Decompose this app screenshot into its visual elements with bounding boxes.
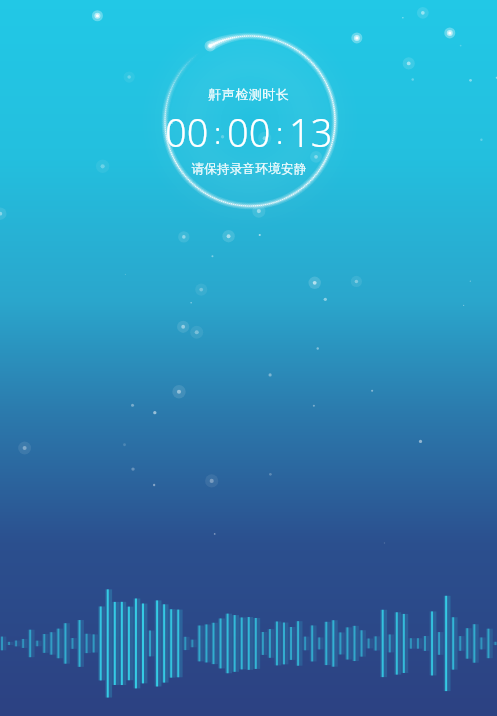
staticText: : xyxy=(214,112,222,153)
staticText: 00 xyxy=(227,106,271,158)
staticText: : xyxy=(276,112,284,153)
staticText: 13 xyxy=(289,106,333,158)
button[interactable]: Recording waveform xyxy=(0,606,497,710)
staticText: 鼾声检测时长 xyxy=(208,86,289,102)
staticText: 00 xyxy=(165,106,209,158)
button[interactable]: 鼾声检测时长 xyxy=(0,86,497,177)
staticText: 请保持录音环境安静 xyxy=(191,161,307,177)
